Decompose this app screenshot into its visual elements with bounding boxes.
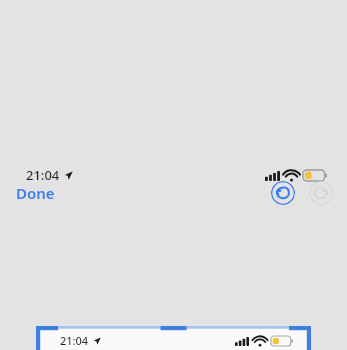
staticText: 21:04 bbox=[60, 333, 89, 348]
button[interactable]: Done bbox=[8, 179, 63, 207]
staticText: 21:04 bbox=[26, 166, 60, 184]
button[interactable]: Redo bbox=[309, 181, 333, 205]
button[interactable]: Undo bbox=[271, 181, 295, 205]
staticText: Done bbox=[16, 183, 55, 203]
